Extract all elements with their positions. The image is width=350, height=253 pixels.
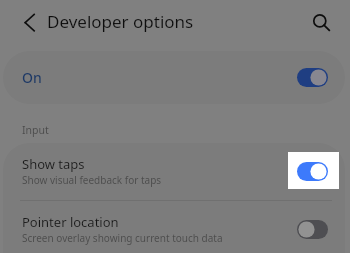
button[interactable]: Search (301, 3, 337, 39)
staticText: Developer options (47, 10, 194, 33)
staticText: Screen overlay showing current touch dat… (22, 231, 223, 245)
staticText: Show visual feedback for taps (22, 173, 162, 187)
staticText: Show taps (22, 155, 85, 173)
staticText: On (22, 68, 42, 87)
button[interactable]: Back (8, 5, 44, 41)
button[interactable]: Pointer location (3, 201, 345, 253)
staticText: Input (22, 123, 49, 137)
button[interactable]: Show taps (3, 143, 345, 201)
button[interactable]: Show taps switch, on (288, 152, 339, 189)
staticText: Pointer location (22, 213, 119, 231)
button[interactable]: On (3, 51, 345, 104)
